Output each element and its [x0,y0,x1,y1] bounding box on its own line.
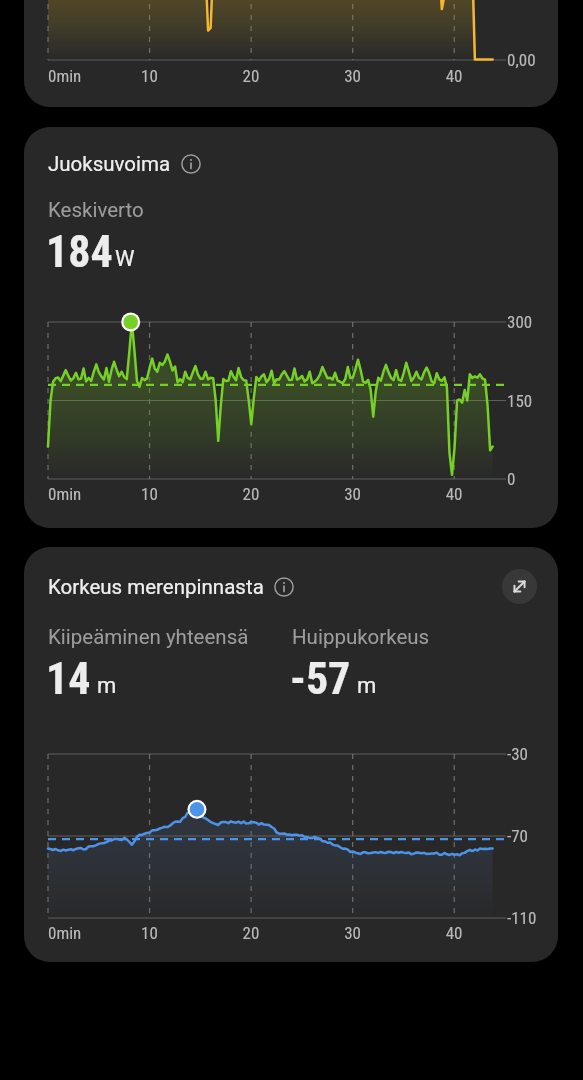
staticText: Korkeus merenpinnasta [48,575,264,599]
staticText: 184 [46,226,113,278]
staticText: m [97,673,117,699]
other: Info [274,577,294,597]
staticText: m [357,673,377,699]
staticText: Kiipeäminen yhteensä [48,625,249,649]
staticText: Juoksuvoima [48,152,171,176]
button[interactable]: Expand chart [502,569,537,604]
staticText: -57 [290,653,351,705]
other: Info [181,154,201,174]
staticText: 14 [46,653,91,705]
button[interactable]: Korkeus merenpinnasta [24,547,558,962]
staticText: Huippukorkeus [292,625,430,649]
button[interactable]: Juoksuvoima [24,127,558,528]
button[interactable] [24,0,558,107]
staticText: Keskiverto [48,198,144,222]
staticText: W [115,246,135,272]
